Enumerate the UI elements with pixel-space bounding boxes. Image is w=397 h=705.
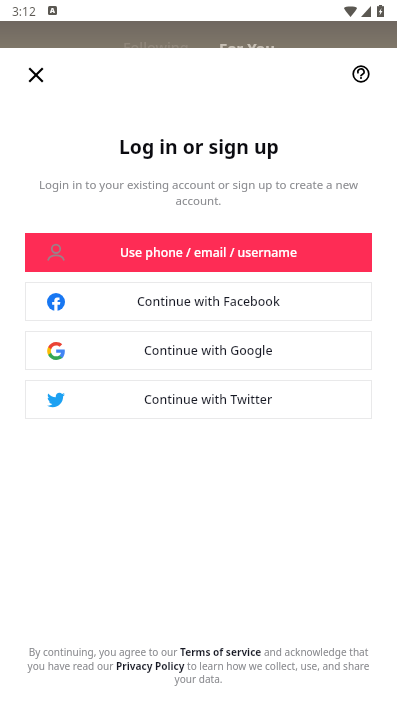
staticText: 3:12 [12,3,36,19]
button[interactable]: Continue with Twitter [25,380,372,419]
staticText: Log in or sign up [119,133,279,159]
staticText: Following [123,38,189,57]
staticText: Login in to your existing account or sig… [38,177,359,208]
staticText: A [50,6,55,15]
staticText: Continue with Twitter [144,391,273,408]
button[interactable]: Continue with Facebook [25,282,372,321]
staticText: For You [219,38,275,58]
button[interactable]: Close [20,59,52,91]
button[interactable]: Continue with Google [25,331,372,370]
staticText: By continuing, you agree to our Terms of… [24,645,373,685]
button[interactable]: Use phone / email / username [25,233,372,272]
button[interactable]: Help [345,58,377,90]
staticText: Use phone / email / username [120,244,297,261]
staticText: Continue with Google [144,342,273,359]
staticText: Continue with Facebook [137,293,280,310]
